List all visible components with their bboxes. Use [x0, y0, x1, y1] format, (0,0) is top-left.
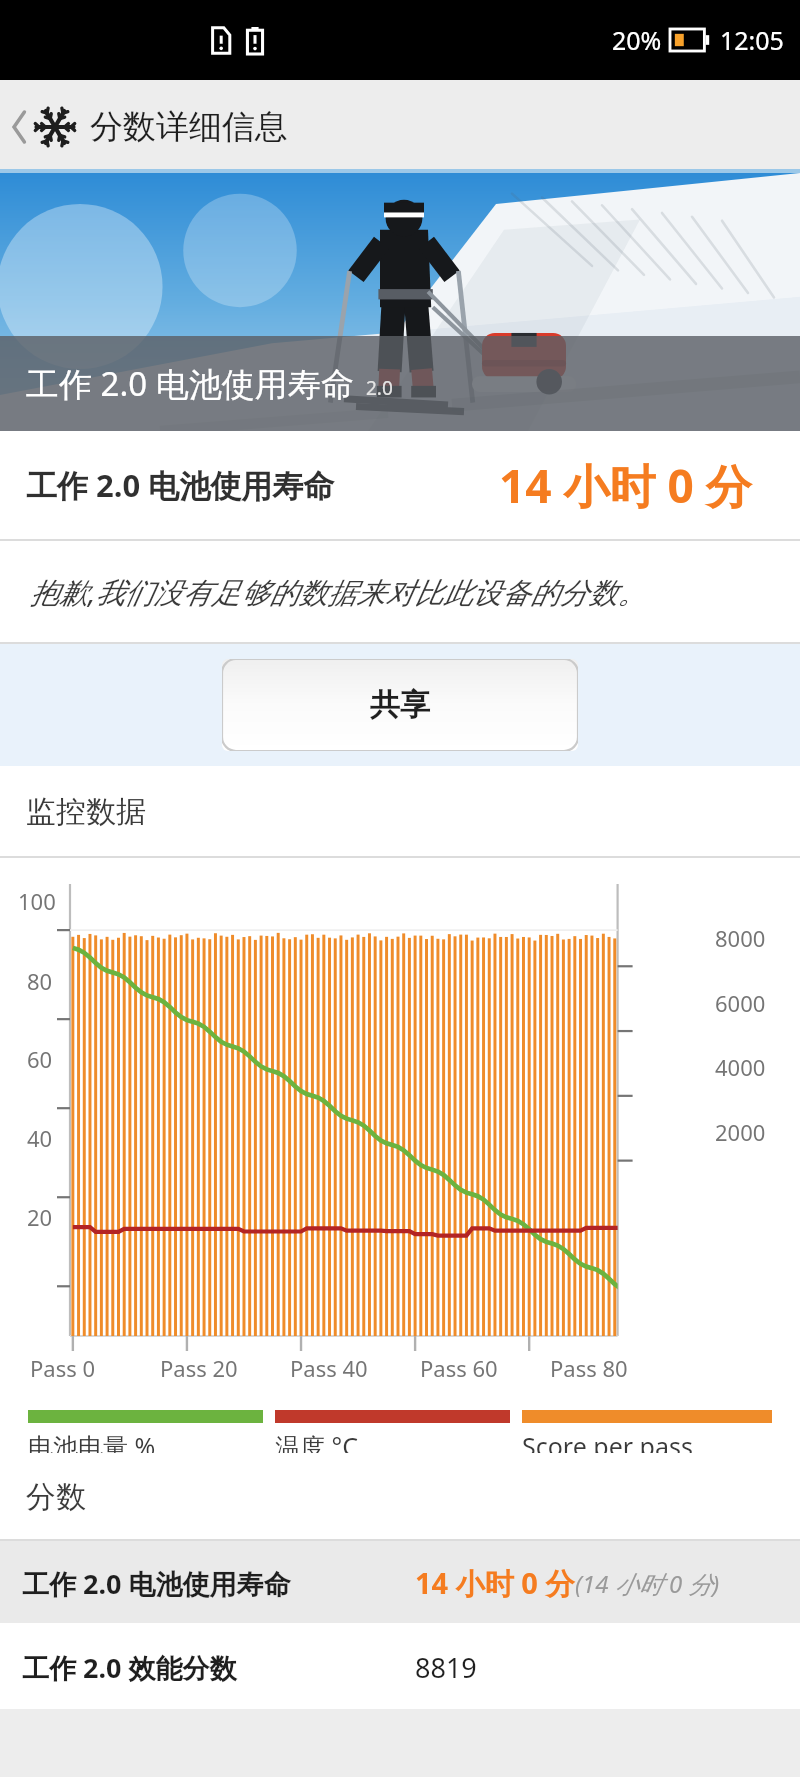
staticText: 抱歉,我们没有足够的数据来对比此设备的分数。: [30, 572, 647, 612]
staticText: 2000: [715, 1117, 766, 1147]
staticText: 20: [27, 1202, 53, 1232]
staticText: 温度 °C: [275, 1429, 359, 1463]
button[interactable]: 工作 2.0 电池使用寿命: [0, 431, 800, 539]
staticText: 12:05: [720, 23, 784, 57]
staticText: 工作 2.0 电池使用寿命: [26, 464, 335, 506]
staticText: Pass 20: [160, 1353, 238, 1383]
staticText: Score per pass: [522, 1429, 693, 1463]
staticText: 14 小时 0 分: [415, 1563, 575, 1603]
other: Back: [10, 110, 30, 144]
staticText: 分数详细信息: [90, 106, 288, 148]
staticText: 共享: [370, 686, 430, 724]
staticText: 20%: [612, 23, 662, 57]
staticText: 80: [27, 966, 53, 996]
button[interactable]: 工作 2.0 电池使用寿命: [0, 173, 800, 431]
staticText: 6000: [715, 988, 766, 1018]
staticText: 电池电量 %: [28, 1429, 156, 1463]
staticText: 14 小时 0 分: [499, 454, 752, 517]
button[interactable]: 工作 2.0 电池使用寿命: [0, 1541, 800, 1625]
staticText: 60: [27, 1044, 53, 1074]
staticText: 40: [27, 1123, 53, 1153]
button[interactable]: 工作 2.0 效能分数: [0, 1625, 800, 1709]
button[interactable]: 共享: [222, 659, 578, 751]
staticText: Pass 40: [290, 1353, 368, 1383]
staticText: 2.0: [366, 375, 393, 401]
staticText: Pass 0: [30, 1353, 96, 1383]
staticText: 分数: [26, 1478, 86, 1516]
staticText: 8000: [715, 923, 766, 953]
staticText: Pass 80: [550, 1353, 628, 1383]
staticText: (14 小时 0 分): [575, 1567, 720, 1600]
staticText: 工作 2.0 电池使用寿命: [22, 1565, 291, 1602]
staticText: 100: [18, 886, 56, 916]
button[interactable]: Back: [0, 106, 298, 148]
staticText: 工作 2.0 电池使用寿命: [26, 361, 354, 406]
staticText: 8819: [415, 1649, 477, 1686]
staticText: 工作 2.0 效能分数: [22, 1649, 237, 1686]
staticText: 4000: [715, 1052, 766, 1082]
staticText: Pass 60: [420, 1353, 498, 1383]
staticText: 监控数据: [26, 793, 146, 831]
